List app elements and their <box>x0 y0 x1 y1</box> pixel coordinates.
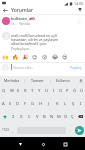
button[interactable]: Ğ <box>71 85 78 96</box>
staticText: F <box>24 101 27 107</box>
button[interactable]: . <box>67 125 73 135</box>
staticText: Yorumlar <box>11 7 34 14</box>
button[interactable]: G <box>29 98 37 109</box>
button[interactable]: Kullanıcı <box>51 76 76 85</box>
staticText: Ğ <box>73 88 77 94</box>
button[interactable]: I <box>77 98 85 109</box>
staticText: mafi.cool63onudnod en uyll hasardan, oli… <box>11 33 74 46</box>
button[interactable]: T <box>29 85 36 96</box>
button[interactable]: O <box>57 85 64 96</box>
button[interactable]: K <box>53 98 61 109</box>
staticText: 😊 <box>32 54 38 60</box>
staticText: Merhaba <box>4 78 20 83</box>
button[interactable]: U <box>43 85 50 96</box>
button[interactable]: Home <box>37 138 49 150</box>
button[interactable]: Recents <box>59 138 71 150</box>
button[interactable]: H <box>37 98 45 109</box>
button[interactable]: I <box>50 85 57 96</box>
staticText: S <box>9 101 12 107</box>
button[interactable]: J <box>45 98 53 109</box>
staticText: 14:00 <box>74 1 84 6</box>
button[interactable]: N <box>48 111 55 122</box>
button[interactable]: X <box>17 111 25 122</box>
button[interactable]: Paylaş <box>68 63 84 72</box>
staticText: Z <box>12 114 15 120</box>
staticText: 1s Yanıtla <box>11 21 30 26</box>
staticText: Yorum ekle... <box>13 65 35 70</box>
button[interactable]: ?123 <box>0 125 10 135</box>
staticText: Paylaş <box>70 65 82 70</box>
button[interactable]: 😍 <box>62 54 68 60</box>
staticText: 🙌 <box>2 54 8 60</box>
button[interactable]: Shift <box>0 111 9 122</box>
button[interactable]: Profile photo <box>2 17 10 25</box>
staticText: 😮 <box>42 54 48 60</box>
staticText: 🎉 <box>22 54 28 60</box>
button[interactable]: Merhaba <box>0 76 24 85</box>
button[interactable]: Like <box>76 19 82 25</box>
staticText: C <box>28 114 31 120</box>
staticText: 😂 <box>52 54 58 60</box>
staticText: P <box>66 88 69 94</box>
staticText: Q <box>2 88 6 94</box>
staticText: Paylaşılıyor... <box>11 46 32 51</box>
staticText: Ç <box>71 114 74 120</box>
button[interactable]: W <box>8 85 15 96</box>
button[interactable]: 😊 <box>32 54 38 60</box>
staticText: Tamam <box>31 78 44 83</box>
button[interactable]: P <box>64 85 71 96</box>
button[interactable]: D <box>14 98 21 109</box>
button[interactable]: L <box>61 98 69 109</box>
staticText: A <box>2 101 5 107</box>
staticText: J <box>48 101 50 107</box>
staticText: B <box>43 114 46 120</box>
button[interactable]: 😮 <box>42 54 48 60</box>
staticText: , <box>12 128 14 133</box>
staticText: N <box>50 114 54 120</box>
button[interactable]: F <box>21 98 29 109</box>
staticText: E <box>17 88 20 94</box>
button[interactable]: Ü <box>78 85 85 96</box>
button[interactable]: Q <box>0 85 8 96</box>
button[interactable]: C <box>25 111 33 122</box>
staticText: V <box>36 114 39 120</box>
button[interactable]: V <box>33 111 41 122</box>
button[interactable]: 🔥 <box>12 54 18 60</box>
staticText: K <box>56 101 59 107</box>
button[interactable]: 😂 <box>52 54 58 60</box>
button[interactable]: Y <box>36 85 43 96</box>
button[interactable]: Back <box>1 6 9 14</box>
button[interactable]: M <box>55 111 62 122</box>
button[interactable]: Ş <box>69 98 77 109</box>
staticText: I <box>53 88 55 94</box>
staticText: M <box>57 114 61 120</box>
button[interactable]: Z <box>9 111 17 122</box>
button[interactable]: E <box>15 85 22 96</box>
staticText: 😍 <box>62 54 68 60</box>
button[interactable]: Send <box>75 126 84 135</box>
button[interactable]: B <box>41 111 48 122</box>
staticText: U <box>45 88 49 94</box>
staticText: L <box>64 101 67 107</box>
staticText: O <box>59 88 63 94</box>
staticText: H <box>39 101 43 107</box>
staticText: ?123 <box>2 128 9 132</box>
button[interactable]: 🎉 <box>22 54 28 60</box>
staticText: . <box>69 128 71 133</box>
button[interactable]: Tamam <box>25 76 50 85</box>
button[interactable]: Filter <box>76 6 84 14</box>
button[interactable]: 🙌 <box>2 54 8 60</box>
button[interactable]: A <box>0 98 7 109</box>
button[interactable]: R <box>22 85 29 96</box>
button[interactable]: , <box>10 125 16 135</box>
button[interactable]: S <box>7 98 14 109</box>
staticText: D <box>16 101 20 107</box>
button[interactable]: Voice input <box>76 76 85 85</box>
button[interactable]: Ö <box>62 111 69 122</box>
button[interactable]: Ç <box>69 111 76 122</box>
button[interactable]: Profile photo <box>2 32 10 40</box>
button[interactable]: Back <box>14 138 26 150</box>
staticText: Ö <box>64 114 68 120</box>
button[interactable]: Backspace <box>76 111 85 122</box>
